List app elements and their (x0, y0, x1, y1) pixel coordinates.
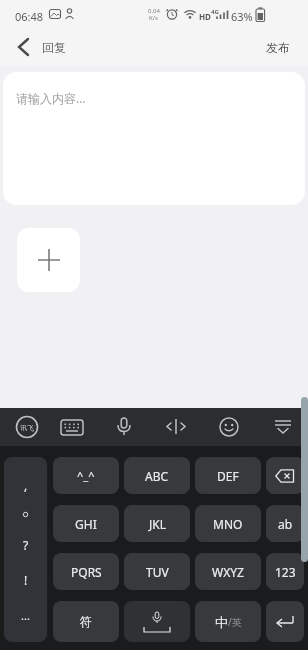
staticText: HD (199, 11, 211, 22)
staticText: 4G (211, 8, 219, 16)
staticText: 63% (231, 9, 253, 24)
staticText: ABC (145, 468, 169, 484)
button[interactable]: 中 (195, 601, 261, 642)
staticText: MNO (213, 516, 243, 532)
staticText: DEF (217, 468, 239, 484)
button[interactable] (269, 413, 297, 441)
staticText: ? (23, 537, 29, 553)
button[interactable] (215, 413, 243, 441)
staticText: 123 (275, 564, 296, 580)
staticText: PQRS (71, 564, 102, 580)
button[interactable]: ABC (124, 457, 190, 494)
staticText: 中 (215, 614, 228, 630)
staticText: ! (24, 572, 28, 588)
button[interactable] (266, 457, 304, 494)
staticText: 讯飞 (20, 423, 34, 432)
button[interactable] (17, 228, 80, 292)
staticText: /英 (228, 615, 242, 629)
button[interactable]: 123 (266, 553, 304, 590)
button[interactable]: WXYZ (195, 553, 261, 590)
staticText: JKL (149, 516, 166, 532)
staticText: ^_^ (77, 468, 95, 483)
staticText: K/s (149, 14, 158, 22)
button[interactable]: JKL (124, 505, 190, 542)
button[interactable] (124, 601, 190, 642)
button[interactable] (162, 413, 190, 441)
button[interactable] (58, 413, 86, 441)
button[interactable]: PQRS (53, 553, 119, 590)
staticText: WXYZ (212, 564, 244, 580)
staticText: 发布 (266, 40, 290, 55)
button[interactable]: DEF (195, 457, 261, 494)
button[interactable]: TUV (124, 553, 190, 590)
staticText: ... (21, 608, 30, 623)
staticText: 06:48 (15, 9, 44, 24)
staticText: 回复 (42, 40, 66, 55)
button[interactable]: ab (266, 505, 304, 542)
button[interactable] (266, 601, 304, 642)
button[interactable]: , (4, 457, 47, 642)
staticText: 0.04 (148, 7, 160, 15)
staticText: TUV (146, 564, 169, 580)
button[interactable]: 请输入内容... (3, 72, 305, 205)
button[interactable]: GHI (53, 505, 119, 542)
button[interactable] (8, 33, 38, 61)
button[interactable]: 发布 (256, 33, 300, 61)
button[interactable]: 讯飞 (13, 413, 41, 441)
button[interactable]: 符 (53, 601, 119, 642)
staticText: ab (278, 516, 293, 532)
staticText: 符 (80, 614, 92, 629)
staticText: GHI (75, 516, 97, 532)
button[interactable] (110, 413, 138, 441)
button[interactable]: MNO (195, 505, 261, 542)
staticText: 请输入内容... (16, 90, 86, 106)
staticText: , (24, 477, 28, 493)
button[interactable]: ^_^ (53, 457, 119, 494)
